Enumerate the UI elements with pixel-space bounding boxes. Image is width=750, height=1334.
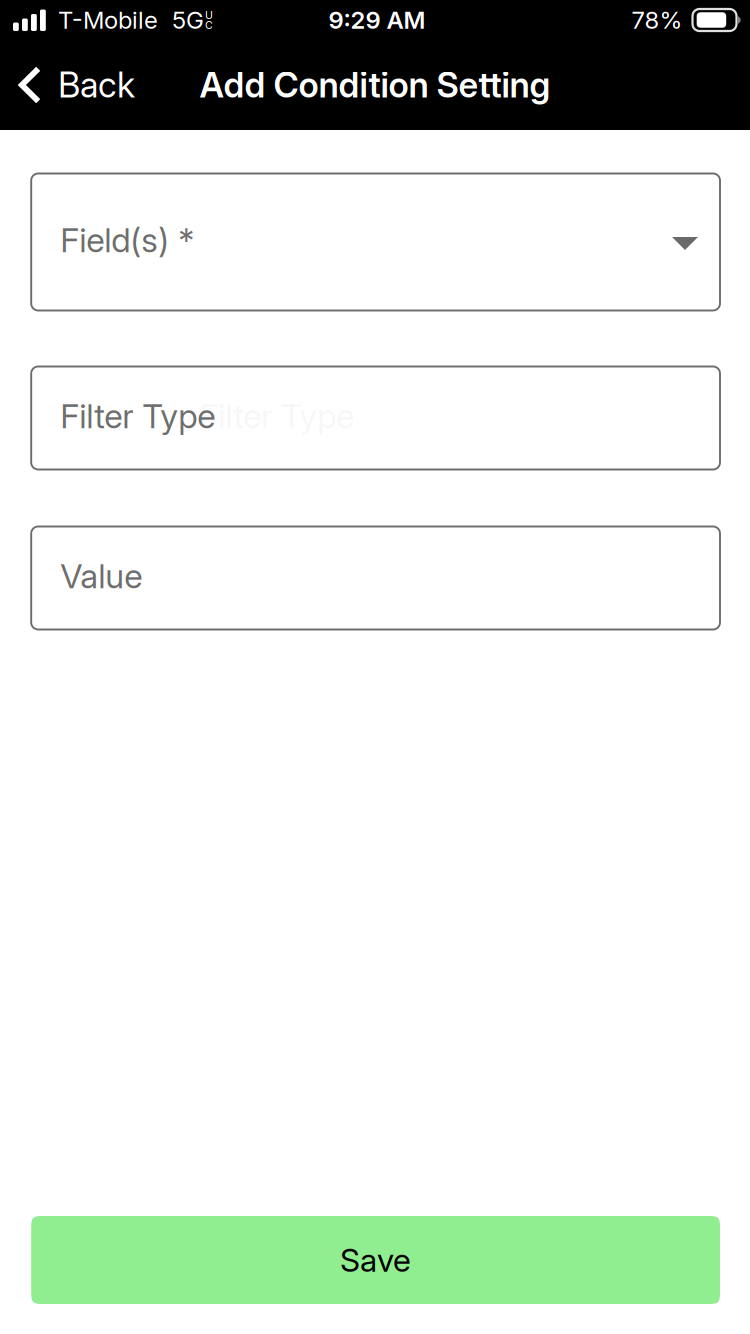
staticText: Back <box>58 64 135 106</box>
staticText: * <box>178 220 194 260</box>
staticText: Filter Type <box>60 396 215 436</box>
staticText: Filter Type <box>199 396 354 436</box>
staticText: 5G <box>172 5 204 34</box>
staticText: Field(s) <box>60 220 169 260</box>
button[interactable]: Save <box>31 1216 720 1304</box>
button[interactable]: Filter Type <box>31 366 720 469</box>
staticText: Add Condition Setting <box>199 64 550 106</box>
staticText: 78% <box>631 5 682 34</box>
button[interactable]: Back <box>0 55 151 115</box>
button[interactable]: Value <box>31 526 720 629</box>
staticText: C <box>205 18 213 31</box>
staticText: Value <box>60 556 142 596</box>
staticText: T-Mobile <box>58 5 158 34</box>
staticText: 9:29 AM <box>328 5 425 34</box>
staticText: U <box>205 8 213 21</box>
button[interactable]: Field(s) <box>31 173 720 310</box>
staticText: Save <box>340 1241 411 1279</box>
